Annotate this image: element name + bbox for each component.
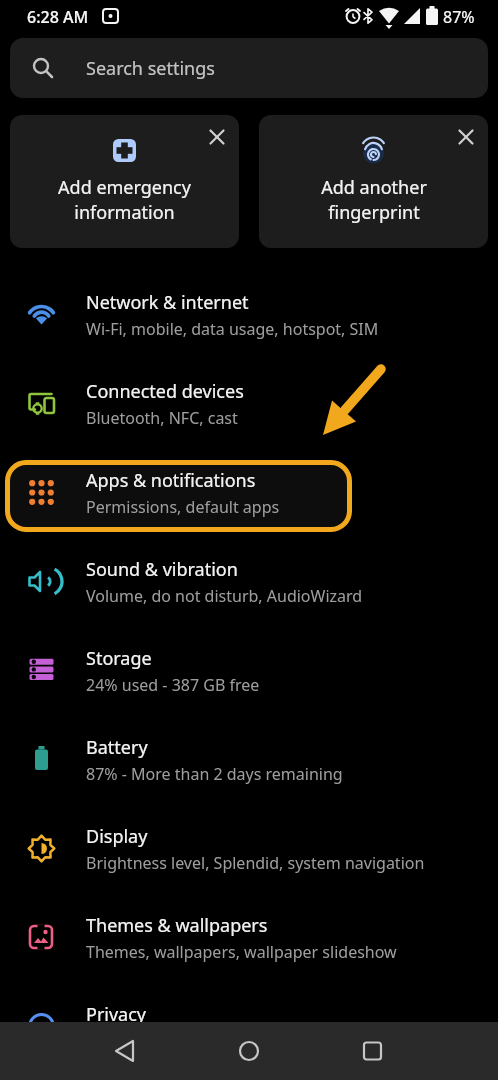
button[interactable] bbox=[104, 1031, 144, 1071]
staticText: Permission manager, account activity bbox=[86, 1030, 365, 1052]
staticText: Permissions, default apps bbox=[86, 496, 280, 518]
staticText: Battery bbox=[86, 735, 148, 760]
button[interactable]: Themes & wallpapers bbox=[0, 893, 498, 982]
staticText: Search settings bbox=[86, 56, 215, 81]
staticText: Storage bbox=[86, 646, 152, 671]
button[interactable]: Sound & vibration bbox=[0, 537, 498, 626]
button[interactable]: Storage bbox=[0, 626, 498, 715]
staticText: 24% used - 387 GB free bbox=[86, 674, 260, 696]
staticText: Display bbox=[86, 824, 148, 849]
staticText: Sound & vibration bbox=[86, 557, 238, 582]
staticText: Network & internet bbox=[86, 290, 249, 315]
staticText: fingerprint bbox=[328, 200, 420, 225]
staticText: Volume, do not disturb, AudioWizard bbox=[86, 585, 363, 607]
button[interactable] bbox=[229, 1031, 269, 1071]
button[interactable]: Network & internet bbox=[0, 270, 498, 359]
staticText: Add emergency bbox=[58, 175, 191, 200]
staticText: Apps & notifications bbox=[86, 468, 256, 493]
staticText: 87% bbox=[443, 6, 475, 28]
button[interactable]: Add emergency bbox=[10, 115, 239, 248]
button[interactable] bbox=[344, 1031, 384, 1071]
button[interactable]: Battery bbox=[0, 715, 498, 804]
button[interactable]: Apps & notifications bbox=[0, 448, 498, 537]
staticText: Bluetooth, NFC, cast bbox=[86, 407, 238, 429]
staticText: 6:28 AM bbox=[27, 6, 89, 28]
staticText: Themes & wallpapers bbox=[86, 913, 268, 938]
button[interactable]: Search settings bbox=[10, 38, 488, 98]
staticText: Themes, wallpapers, wallpaper slideshow bbox=[86, 941, 397, 963]
button[interactable]: Privacy bbox=[0, 982, 498, 1071]
staticText: Privacy bbox=[86, 1002, 147, 1027]
staticText: Add another bbox=[321, 175, 427, 200]
staticText: Connected devices bbox=[86, 379, 244, 404]
button[interactable]: Display bbox=[0, 804, 498, 893]
staticText: Wi-Fi, mobile, data usage, hotspot, SIM bbox=[86, 318, 379, 340]
staticText: Brightness level, Splendid, system navig… bbox=[86, 852, 425, 874]
button[interactable]: Add another bbox=[259, 115, 488, 248]
button[interactable]: Connected devices bbox=[0, 359, 498, 448]
staticText: 87% - More than 2 days remaining bbox=[86, 763, 343, 785]
staticText: information bbox=[74, 200, 175, 225]
